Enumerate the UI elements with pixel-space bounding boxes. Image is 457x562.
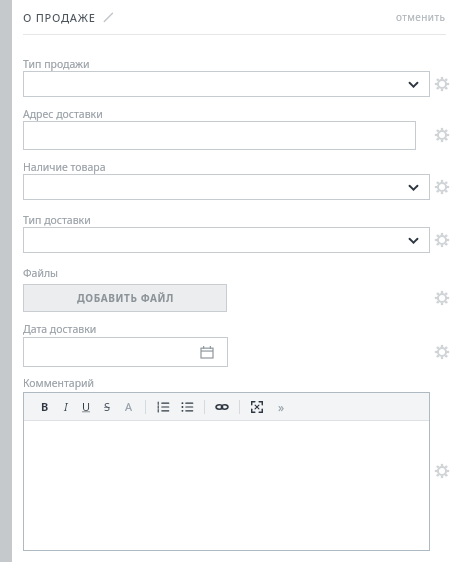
staticText: » — [278, 399, 285, 415]
staticText: О ПРОДАЖЕ — [23, 10, 96, 25]
staticText: Тип продажи — [23, 57, 90, 71]
button[interactable]: Field settings — [436, 78, 448, 90]
button[interactable]: Open list — [23, 174, 430, 200]
button[interactable]: Field settings — [436, 465, 448, 477]
button[interactable]: A — [118, 393, 140, 420]
button[interactable]: I — [55, 393, 76, 420]
button[interactable]: О ПРОДАЖЕ — [23, 10, 114, 25]
button[interactable]: Fullscreen — [245, 393, 269, 420]
staticText: Комментарий — [23, 376, 95, 390]
staticText: Дата доставки — [23, 322, 97, 336]
button[interactable]: Pick date — [23, 337, 228, 367]
staticText: ДОБАВИТЬ ФАЙЛ — [77, 291, 174, 305]
button[interactable]: Insert link — [210, 393, 234, 420]
button[interactable]: Numbered list — [151, 393, 175, 420]
button[interactable]: Field settings — [436, 292, 448, 304]
staticText: A — [125, 399, 133, 414]
button[interactable]: S — [97, 393, 118, 420]
button[interactable]: Field settings — [436, 346, 448, 358]
other: Open list — [408, 79, 419, 90]
staticText: B — [41, 399, 49, 414]
button[interactable]: отменить — [396, 10, 446, 24]
staticText: Наличие товара — [23, 160, 106, 174]
staticText: S — [104, 399, 111, 414]
button[interactable]: ДОБАВИТЬ ФАЙЛ — [23, 284, 227, 312]
staticText: отменить — [396, 10, 446, 24]
other: Open list — [408, 235, 419, 246]
other: Edit — [103, 12, 114, 23]
staticText: Тип доставки — [23, 213, 91, 227]
staticText: U — [82, 399, 91, 414]
button[interactable]: U — [76, 393, 97, 420]
staticText: I — [64, 399, 68, 414]
button[interactable]: B — [34, 393, 55, 420]
button[interactable]: » — [269, 393, 293, 420]
button[interactable]: Field settings — [436, 181, 448, 193]
button[interactable]: Bulleted list — [175, 393, 199, 420]
button[interactable]: Open list — [23, 71, 430, 97]
button[interactable]: Open list — [23, 227, 430, 253]
button[interactable]: Field settings — [436, 129, 448, 141]
button[interactable]: Field settings — [436, 234, 448, 246]
staticText: Файлы — [23, 266, 59, 280]
staticText: Адрес доставки — [23, 107, 103, 121]
button[interactable] — [23, 121, 416, 150]
other: Open list — [408, 182, 419, 193]
other: Pick date — [201, 346, 213, 358]
